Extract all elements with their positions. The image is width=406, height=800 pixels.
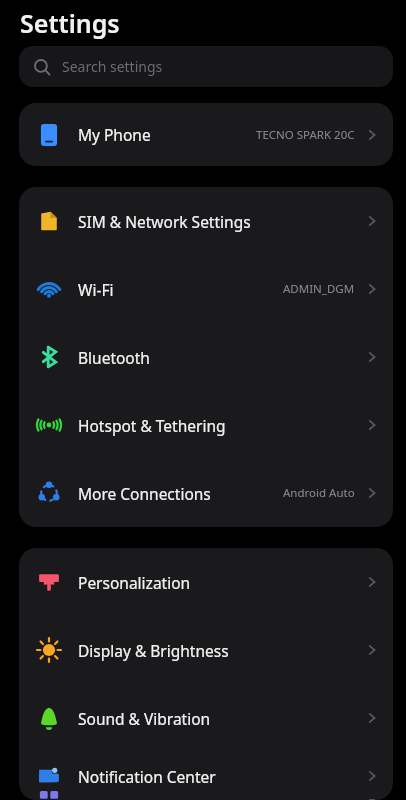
staticText: Bluetooth — [78, 347, 364, 368]
button[interactable]: Personalization — [19, 548, 393, 616]
staticText: Sound & Vibration — [78, 708, 364, 729]
staticText: Wi-Fi — [78, 279, 283, 300]
button[interactable]: Wi-Fi — [19, 255, 393, 323]
button[interactable]: My Phone — [19, 103, 393, 166]
staticText: Display & Brightness — [78, 640, 364, 661]
button[interactable]: Hotspot & Tethering — [19, 391, 393, 459]
staticText: Settings — [20, 6, 120, 40]
staticText: ADMIN_DGM — [283, 281, 355, 297]
button[interactable]: SIM & Network Settings — [19, 187, 393, 255]
staticText: Hotspot & Tethering — [78, 415, 364, 436]
button[interactable]: Bluetooth — [19, 323, 393, 391]
staticText: My Phone — [78, 124, 256, 145]
button[interactable]: Notification Center — [19, 752, 393, 800]
staticText: SIM & Network Settings — [78, 211, 364, 232]
staticText: Personalization — [78, 572, 364, 593]
button[interactable]: Search settings — [19, 46, 393, 87]
button[interactable]: Sound & Vibration — [19, 684, 393, 752]
staticText: Notification Center — [78, 766, 364, 787]
button[interactable]: More Connections — [19, 459, 393, 527]
button[interactable]: Display & Brightness — [19, 616, 393, 684]
staticText: More Connections — [78, 483, 283, 504]
staticText: Android Auto — [283, 485, 355, 501]
staticText: Search settings — [62, 57, 163, 76]
staticText: TECNO SPARK 20C — [256, 127, 355, 143]
